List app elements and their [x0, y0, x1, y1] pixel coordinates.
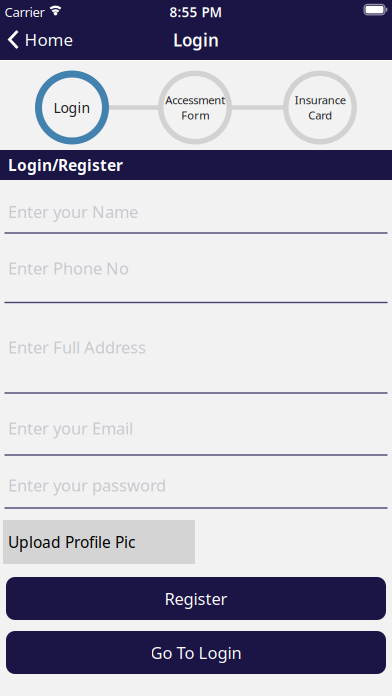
- staticText: Login/Register: [8, 154, 123, 175]
- button[interactable]: Register: [6, 577, 386, 620]
- staticText: 8:55 PM: [169, 3, 222, 21]
- staticText: Go To Login: [150, 641, 241, 664]
- button[interactable]: Upload Profile Pic: [3, 520, 195, 564]
- staticText: Enter your password: [8, 474, 166, 496]
- staticText: Upload Profile Pic: [8, 531, 135, 552]
- button[interactable]: Go To Login: [6, 631, 386, 674]
- staticText: Accessment Form: [165, 92, 225, 123]
- staticText: Login: [173, 28, 219, 52]
- staticText: Login: [53, 98, 90, 117]
- staticText: Register: [164, 587, 227, 610]
- staticText: Enter your Email: [8, 417, 133, 439]
- staticText: Home: [24, 28, 73, 51]
- button[interactable]: Home: [0, 23, 90, 56]
- staticText: Carrier: [4, 3, 44, 21]
- staticText: Enter your Name: [8, 200, 138, 223]
- staticText: Insurance Card: [294, 92, 345, 123]
- staticText: Enter Phone No: [8, 257, 129, 279]
- staticText: Enter Full Address: [8, 336, 146, 358]
